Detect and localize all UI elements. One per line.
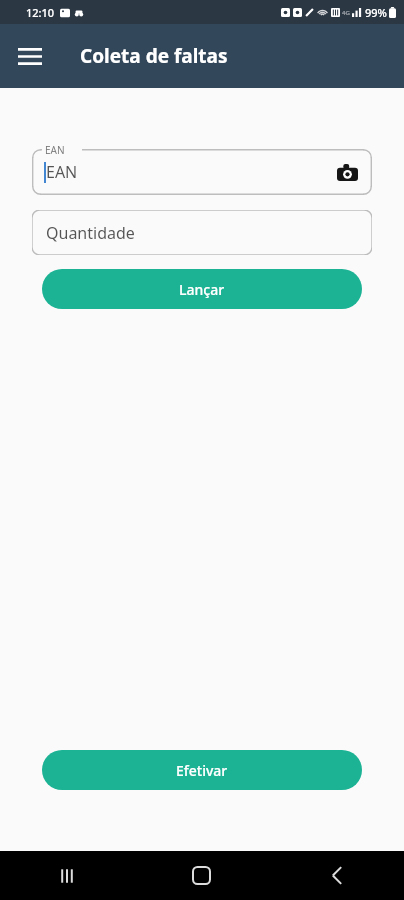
staticText: EAN xyxy=(45,143,65,157)
button[interactable]: Back xyxy=(269,851,404,900)
button[interactable]: Open navigation menu xyxy=(6,32,54,80)
button[interactable]: Home xyxy=(134,851,269,900)
staticText: 12:10 xyxy=(26,5,55,20)
button[interactable]: Quantidade xyxy=(32,210,372,255)
button[interactable]: Efetivar xyxy=(42,750,362,790)
staticText: 99% xyxy=(365,5,387,20)
staticText: Quantidade xyxy=(46,222,135,244)
staticText: Efetivar xyxy=(176,761,228,780)
staticText: Lançar xyxy=(179,280,225,299)
button[interactable]: Scan barcode with camera xyxy=(330,155,364,189)
button[interactable]: EAN xyxy=(32,149,372,195)
staticText: EAN xyxy=(46,161,78,183)
button[interactable]: Recent apps xyxy=(0,851,134,900)
staticText: Coleta de faltas xyxy=(80,43,228,69)
staticText: 4G xyxy=(342,9,350,17)
button[interactable]: Lançar xyxy=(42,269,362,309)
